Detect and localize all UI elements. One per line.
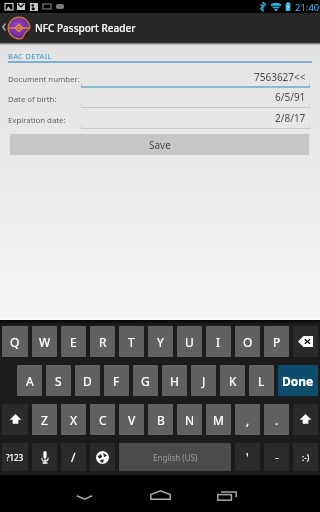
staticText: N <box>185 412 195 428</box>
button[interactable]: B <box>148 404 173 435</box>
staticText: U <box>185 334 194 350</box>
button[interactable]: D <box>75 365 100 396</box>
button[interactable]: X <box>61 404 86 435</box>
staticText: Document number: <box>8 74 80 85</box>
staticText: / <box>71 449 76 465</box>
staticText: Save <box>149 138 171 152</box>
staticText: 21:40 <box>295 1 320 14</box>
button[interactable]: F <box>104 365 129 396</box>
button[interactable]: Voice input <box>32 443 57 471</box>
button[interactable]: - <box>264 443 289 471</box>
staticText: Done <box>282 373 314 389</box>
staticText: Q <box>10 334 20 350</box>
button[interactable]: T <box>119 326 144 357</box>
button[interactable]: Backspace <box>293 326 318 357</box>
staticText: ' <box>246 449 249 465</box>
button[interactable]: Hide keyboard <box>66 475 119 512</box>
button[interactable]: Z <box>32 404 57 435</box>
button[interactable]: K <box>220 365 245 396</box>
button[interactable]: Recent apps <box>203 475 256 512</box>
button[interactable]: Home <box>134 475 187 512</box>
button[interactable]: :-) <box>293 443 318 471</box>
staticText: Expiration date: <box>8 115 66 126</box>
button[interactable]: Navigate up <box>0 13 33 42</box>
staticText: W <box>39 334 51 350</box>
staticText: , <box>246 412 250 428</box>
button[interactable]: I <box>206 326 231 357</box>
button[interactable]: Shift <box>2 404 28 435</box>
staticText: M <box>213 412 224 428</box>
staticText: 6/5/91 <box>275 90 306 104</box>
button[interactable]: S <box>46 365 71 396</box>
button[interactable]: U <box>177 326 202 357</box>
staticText: B <box>157 412 165 428</box>
button[interactable]: , <box>235 404 260 435</box>
button[interactable]: ?123 <box>2 443 28 471</box>
staticText: I <box>216 334 221 350</box>
button[interactable]: English (US) <box>119 443 231 471</box>
staticText: F <box>113 373 120 389</box>
staticText: A <box>26 373 34 389</box>
button[interactable]: L <box>249 365 274 396</box>
button[interactable]: P <box>264 326 289 357</box>
staticText: Z <box>41 412 48 428</box>
staticText: R <box>99 334 107 350</box>
staticText: V <box>128 412 136 428</box>
staticText: English (US) <box>153 452 198 463</box>
button[interactable]: A <box>17 365 42 396</box>
button[interactable]: G <box>133 365 158 396</box>
button[interactable]: Q <box>2 326 28 357</box>
button[interactable]: E <box>61 326 86 357</box>
button[interactable]: C <box>90 404 115 435</box>
staticText: Date of birth: <box>8 94 57 105</box>
button[interactable]: Y <box>148 326 173 357</box>
button[interactable]: V <box>119 404 144 435</box>
button[interactable]: J <box>191 365 216 396</box>
staticText: T <box>128 334 135 350</box>
staticText: C <box>99 412 107 428</box>
staticText: J <box>202 373 206 389</box>
staticText: H <box>170 373 179 389</box>
button[interactable]: / <box>61 443 86 471</box>
staticText: 2/8/17 <box>275 111 306 125</box>
button[interactable]: . <box>264 404 289 435</box>
button[interactable]: M <box>206 404 231 435</box>
staticText: E <box>70 334 77 350</box>
staticText: - <box>275 449 279 465</box>
staticText: NFC Passport Reader <box>35 21 136 35</box>
staticText: D <box>83 373 92 389</box>
staticText: P <box>273 334 281 350</box>
button[interactable]: Done <box>278 365 318 396</box>
button[interactable]: Shift <box>293 404 318 435</box>
button[interactable]: Change language <box>90 443 115 471</box>
button[interactable]: Save <box>10 134 309 155</box>
staticText: ?123 <box>6 452 24 463</box>
staticText: BAC DETAIL <box>8 51 52 61</box>
button[interactable]: N <box>177 404 202 435</box>
staticText: 7563627<< <box>254 70 306 84</box>
staticText: Y <box>157 334 164 350</box>
button[interactable]: ' <box>235 443 260 471</box>
staticText: :-) <box>302 452 310 463</box>
staticText: X <box>70 412 78 428</box>
staticText: O <box>243 334 253 350</box>
button[interactable]: W <box>32 326 57 357</box>
staticText: L <box>258 373 265 389</box>
button[interactable]: O <box>235 326 260 357</box>
staticText: G <box>141 373 150 389</box>
button[interactable]: R <box>90 326 115 357</box>
staticText: . <box>275 412 279 428</box>
staticText: S <box>55 373 62 389</box>
button[interactable]: H <box>162 365 187 396</box>
staticText: K <box>229 373 237 389</box>
